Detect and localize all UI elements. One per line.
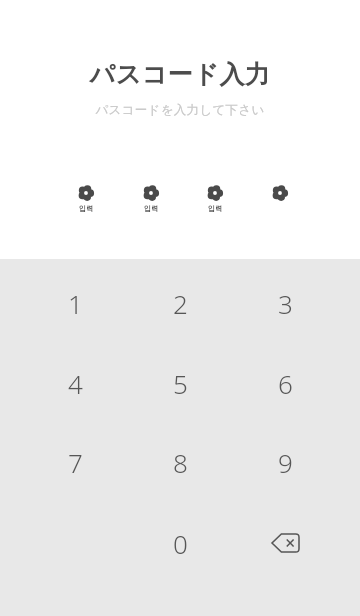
staticText: 2 — [173, 286, 188, 321]
button[interactable]: 2 — [128, 263, 233, 343]
staticText: パスコード入力 — [0, 59, 360, 90]
button[interactable]: 3 — [233, 263, 338, 343]
button[interactable]: Backspace — [233, 503, 338, 583]
staticText: 9 — [278, 445, 293, 480]
button[interactable]: 5 — [128, 343, 233, 423]
button[interactable]: 9 — [233, 422, 338, 502]
staticText: 5 — [173, 366, 188, 401]
staticText: 입력 — [144, 204, 158, 213]
button[interactable]: 6 — [233, 343, 338, 423]
button[interactable]: 4 — [23, 343, 128, 423]
staticText: パスコードを入力して下さい — [0, 102, 360, 118]
staticText: 1 — [68, 286, 83, 321]
staticText: 3 — [278, 286, 293, 321]
button[interactable]: 1 — [23, 263, 128, 343]
staticText: 7 — [68, 445, 83, 480]
button[interactable]: 0 — [128, 503, 233, 583]
button[interactable]: 8 — [128, 422, 233, 502]
staticText: 4 — [68, 366, 83, 401]
staticText: 입력 — [79, 204, 93, 213]
staticText: 6 — [278, 366, 293, 401]
staticText: 8 — [173, 445, 188, 480]
button[interactable]: 7 — [23, 422, 128, 502]
staticText: 0 — [173, 526, 188, 561]
staticText: 입력 — [208, 204, 222, 213]
